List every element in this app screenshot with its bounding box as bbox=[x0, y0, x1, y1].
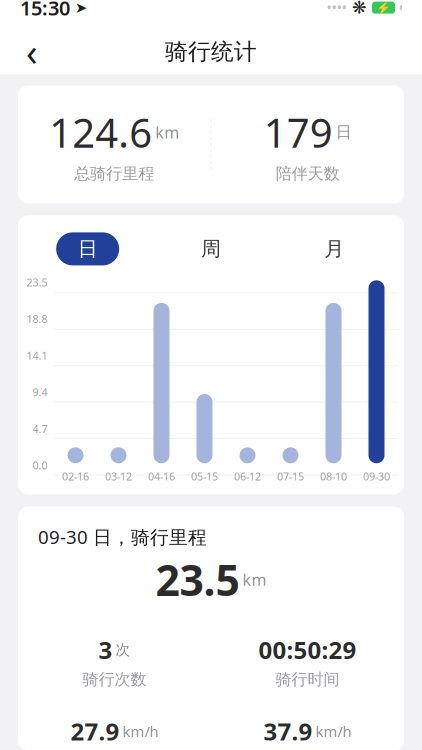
staticText: ➤ bbox=[75, 0, 87, 16]
staticText: 骑行统计 bbox=[165, 38, 257, 65]
staticText: 日 bbox=[336, 122, 352, 142]
staticText: 23.5 bbox=[26, 275, 47, 289]
staticText: 07-15 bbox=[277, 469, 304, 483]
staticText: 月 bbox=[324, 237, 344, 261]
button[interactable]: 周 bbox=[149, 232, 273, 265]
staticText: ❋ bbox=[352, 0, 367, 17]
staticText: 14.1 bbox=[26, 348, 47, 363]
staticText: 15:30 bbox=[20, 0, 70, 21]
staticText: km/h bbox=[315, 722, 351, 741]
staticText: •••• bbox=[327, 0, 347, 15]
staticText: ‹ bbox=[26, 27, 38, 76]
staticText: ⚡ bbox=[376, 1, 391, 14]
staticText: 06-12 bbox=[234, 469, 261, 483]
staticText: 周 bbox=[201, 237, 221, 261]
staticText: 总骑行里程 bbox=[74, 164, 154, 183]
staticText: 09-30 bbox=[363, 469, 390, 483]
staticText: 日 bbox=[78, 237, 98, 261]
staticText: 124.6 bbox=[49, 106, 152, 159]
staticText: 09-30 日，骑行里程 bbox=[38, 524, 207, 549]
staticText: 179 bbox=[264, 106, 333, 159]
staticText: km bbox=[155, 121, 179, 143]
staticText: 03-12 bbox=[105, 469, 132, 483]
staticText: 骑行次数 bbox=[82, 670, 146, 689]
staticText: 02-16 bbox=[62, 469, 89, 483]
staticText: 05-15 bbox=[191, 469, 218, 483]
button[interactable]: Back bbox=[10, 30, 54, 74]
staticText: km/h bbox=[122, 722, 158, 741]
staticText: 4.7 bbox=[32, 422, 47, 436]
staticText: 23.5 bbox=[155, 551, 239, 608]
staticText: 27.9 bbox=[70, 715, 119, 747]
staticText: km bbox=[242, 569, 266, 590]
staticText: 37.9 bbox=[263, 715, 312, 747]
button[interactable]: 月 bbox=[273, 232, 396, 265]
staticText: 陪伴天数 bbox=[276, 164, 340, 183]
staticText: 04-16 bbox=[148, 469, 175, 483]
staticText: 3 bbox=[98, 634, 112, 666]
staticText: 0.0 bbox=[32, 458, 47, 472]
button[interactable]: 日 bbox=[26, 232, 149, 265]
staticText: 08-10 bbox=[320, 469, 347, 483]
staticText: 骑行时间 bbox=[275, 670, 339, 689]
staticText: 9.4 bbox=[32, 385, 47, 399]
staticText: 次 bbox=[115, 641, 130, 659]
staticText: 18.8 bbox=[26, 312, 47, 326]
staticText: 00:50:29 bbox=[258, 634, 356, 666]
